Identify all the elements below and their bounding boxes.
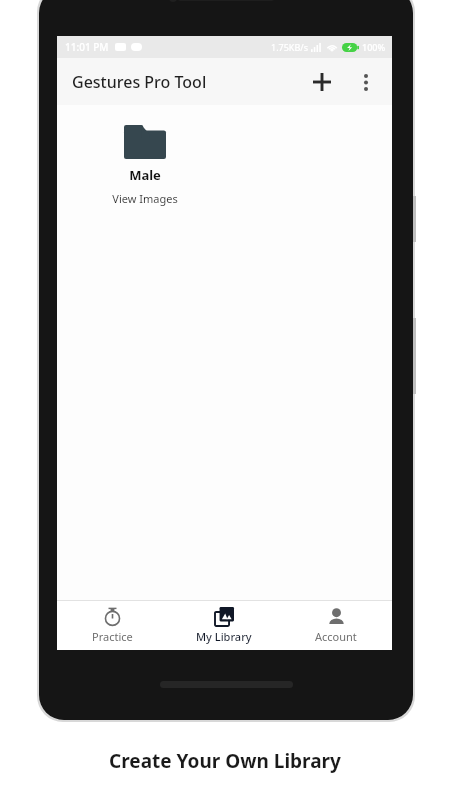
button[interactable]: Add: [300, 60, 344, 104]
staticText: My Library: [196, 629, 252, 644]
button[interactable]: Male: [97, 125, 193, 206]
button[interactable]: Account: [280, 601, 392, 650]
staticText: Create Your Own Library: [109, 748, 341, 774]
staticText: Account: [315, 629, 357, 644]
staticText: 100%: [362, 41, 386, 53]
staticText: 11:01 PM: [65, 40, 109, 54]
button[interactable]: More options: [344, 60, 388, 104]
staticText: Practice: [92, 629, 133, 644]
button[interactable]: My Library: [168, 601, 280, 650]
staticText: 1.75KB/s: [271, 41, 308, 53]
button[interactable]: Practice: [57, 601, 168, 650]
staticText: Male: [129, 166, 161, 184]
staticText: View Images: [112, 191, 178, 206]
staticText: Gestures Pro Tool: [72, 71, 207, 93]
